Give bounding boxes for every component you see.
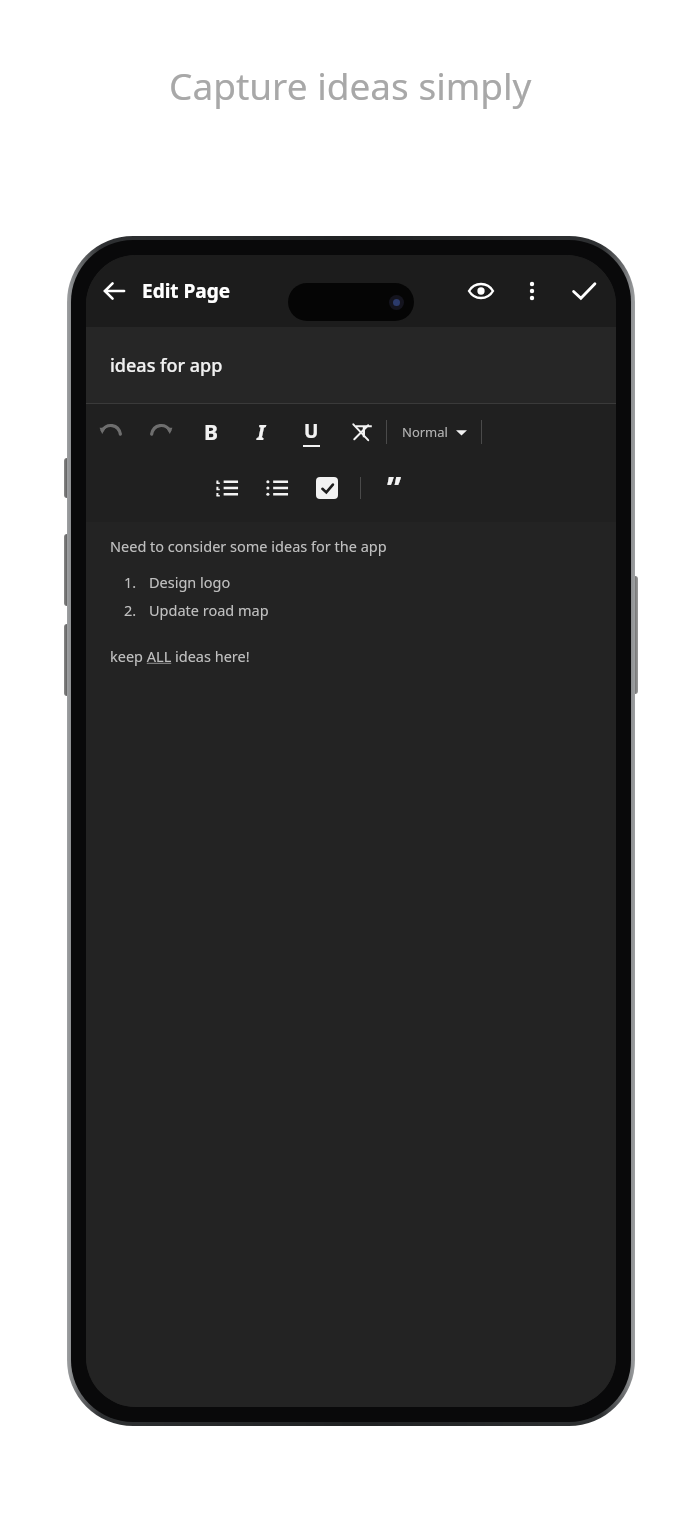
button[interactable]: Clear formatting	[336, 407, 386, 457]
button[interactable]: Save	[556, 263, 612, 319]
button[interactable]: Preview	[454, 264, 508, 318]
staticText: Capture ideas simply	[169, 60, 532, 110]
staticText: 2.	[124, 600, 137, 620]
staticText: Update road map	[149, 600, 269, 620]
button[interactable]: Undo	[86, 407, 136, 457]
staticText: ideas for app	[110, 353, 223, 378]
staticText: I	[257, 418, 266, 447]
button[interactable]: Italic	[236, 407, 286, 457]
button[interactable]: Bulleted list	[252, 463, 302, 513]
staticText: keep ALL ideas here!	[110, 646, 250, 666]
staticText: Design logo	[149, 572, 231, 592]
staticText: Edit Page	[142, 278, 231, 304]
button[interactable]: Redo	[136, 407, 186, 457]
staticText: U	[304, 418, 319, 444]
button[interactable]: Normal	[387, 412, 481, 452]
button[interactable]: Numbered list	[202, 463, 252, 513]
button[interactable]: Checklist	[302, 463, 352, 513]
staticText: ”	[387, 466, 402, 510]
button[interactable]: Quote	[369, 463, 419, 513]
button[interactable]: Bold	[186, 407, 236, 457]
button[interactable]: More options	[508, 267, 556, 315]
staticText: B	[204, 418, 218, 447]
staticText: Need to consider some ideas for the app	[110, 536, 387, 556]
button[interactable]: ideas for app	[86, 327, 616, 403]
button[interactable]: Underline	[286, 407, 336, 457]
staticText: 1.	[124, 572, 137, 592]
button[interactable]: Back	[86, 263, 142, 319]
staticText: Normal	[402, 423, 448, 441]
